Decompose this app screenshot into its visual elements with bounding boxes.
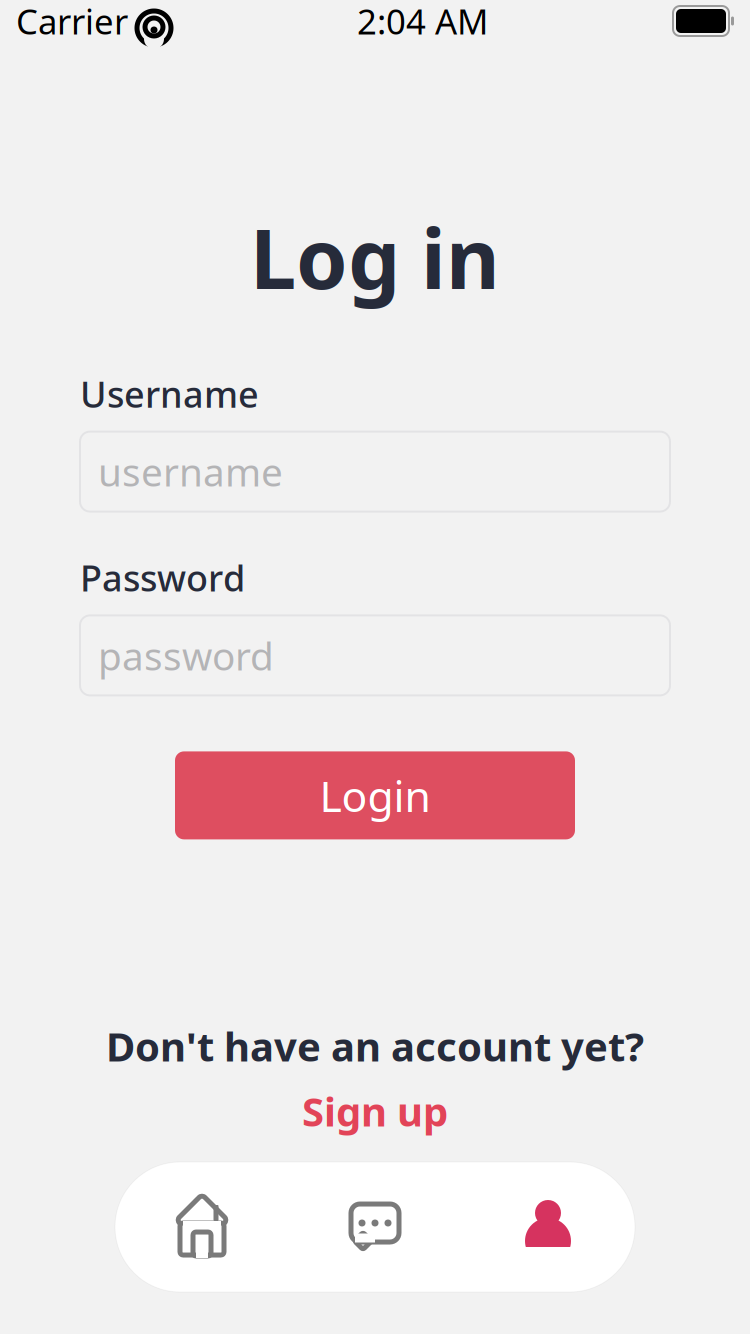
staticText: password [98, 630, 274, 681]
staticText: 2:04 AM [357, 0, 488, 44]
button[interactable]: Login [175, 751, 575, 839]
staticText: Password [80, 554, 245, 601]
button[interactable]: Home [115, 1162, 288, 1292]
button[interactable]: username [80, 432, 670, 512]
staticText: Sign up [302, 1084, 448, 1138]
staticText: Log in [250, 202, 500, 312]
button[interactable]: Messages [288, 1162, 461, 1292]
staticText: Carrier [16, 0, 128, 44]
button[interactable]: password [80, 615, 670, 695]
button[interactable]: Profile [461, 1162, 634, 1292]
staticText: Username [80, 370, 259, 418]
button[interactable]: Sign up [292, 1080, 458, 1142]
staticText: username [98, 446, 283, 497]
staticText: Don't have an account yet? [106, 1019, 644, 1072]
staticText: Login [319, 767, 430, 824]
